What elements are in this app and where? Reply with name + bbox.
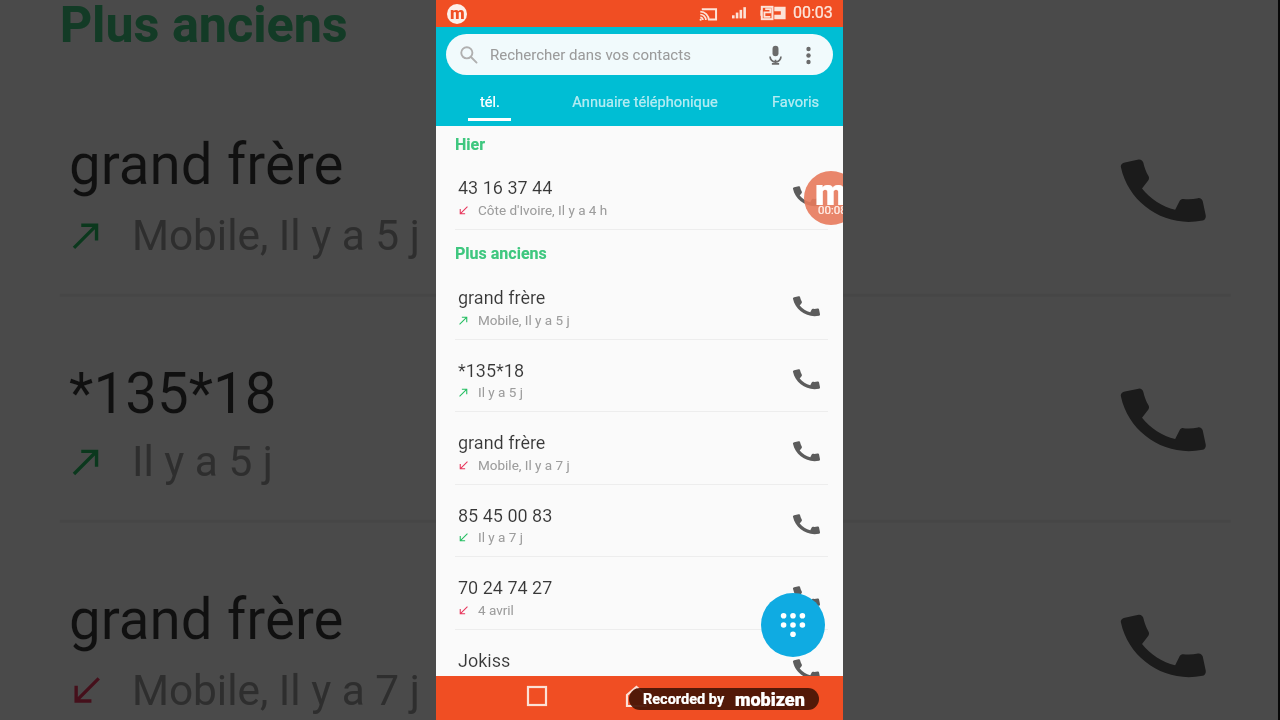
staticText: Annuaire téléphonique — [572, 93, 718, 110]
button[interactable] — [436, 267, 843, 339]
button[interactable] — [436, 340, 843, 412]
button[interactable] — [0, 297, 1278, 523]
button[interactable]: Recent apps — [521, 680, 553, 712]
staticText: Mobile, Il y a 7 j — [132, 664, 421, 714]
staticText: Mobile, Il y a 5 j — [478, 312, 570, 328]
staticText: Recorded by — [643, 691, 725, 708]
staticText: 00:03 — [793, 3, 833, 22]
button[interactable]: Call Jokiss — [789, 652, 823, 676]
button[interactable] — [436, 630, 843, 676]
button[interactable]: Call 43 16 37 44 — [789, 179, 823, 213]
staticText: Il y a 7 j — [478, 529, 523, 545]
staticText: 00:08 — [818, 203, 843, 216]
button[interactable]: Favoris — [748, 81, 843, 126]
staticText: m — [450, 4, 465, 23]
button[interactable]: Call *135*18 — [1108, 366, 1215, 473]
staticText: m — [815, 172, 843, 214]
button[interactable]: Call 85 45 00 83 — [789, 507, 823, 541]
button[interactable]: Mobizen — [447, 4, 467, 24]
staticText: mobizen — [735, 689, 805, 710]
staticText: Il y a 5 j — [478, 384, 523, 400]
button[interactable]: Annuaire téléphonique — [542, 81, 748, 126]
button[interactable]: Call grand frère — [789, 289, 823, 323]
staticText: 4 avril — [478, 602, 514, 618]
staticText: Hier — [455, 135, 486, 154]
button[interactable]: Call 70 24 74 27 — [789, 579, 823, 613]
staticText: *135*18 — [458, 360, 525, 381]
staticText: grand frère — [458, 287, 546, 308]
button[interactable] — [0, 523, 1278, 720]
button[interactable] — [436, 485, 843, 557]
staticText: 85 45 00 83 — [458, 505, 553, 526]
button[interactable] — [436, 157, 843, 229]
staticText: Plus anciens — [455, 244, 547, 263]
button[interactable]: Mobizen recorder — [804, 171, 843, 225]
button[interactable] — [436, 557, 843, 629]
button[interactable]: Rechercher dans vos contacts — [446, 34, 833, 75]
button[interactable]: Recorded by — [643, 688, 805, 710]
staticText: grand frère — [458, 432, 546, 453]
button[interactable]: Home — [620, 680, 652, 712]
staticText: 43 16 37 44 — [458, 177, 553, 198]
button[interactable]: Call *135*18 — [789, 362, 823, 396]
button[interactable] — [0, 67, 1278, 294]
button[interactable]: Call grand frère — [1108, 592, 1215, 699]
staticText: tél. — [480, 93, 500, 110]
button[interactable]: Open dialpad — [761, 593, 825, 657]
staticText: *135*18 — [69, 359, 279, 425]
staticText: Favoris — [772, 93, 819, 110]
button[interactable]: Call grand frère — [789, 434, 823, 468]
staticText: Mobile, Il y a 7 j — [478, 457, 570, 473]
button[interactable]: tél. — [436, 81, 542, 126]
button[interactable]: Call grand frère — [1108, 137, 1215, 243]
staticText: Rechercher dans vos contacts — [490, 46, 691, 64]
staticText: Il y a 5 j — [132, 435, 273, 485]
staticText: Jokiss — [458, 650, 511, 671]
staticText: Côte d'Ivoire, Il y a 4 h — [478, 202, 608, 218]
staticText: grand frère — [69, 130, 345, 196]
staticText: Plus anciens — [60, 0, 349, 55]
button[interactable] — [436, 412, 843, 484]
staticText: 70 24 74 27 — [458, 577, 553, 598]
staticText: Mobile, Il y a 5 j — [132, 209, 421, 259]
staticText: grand frère — [69, 586, 345, 651]
